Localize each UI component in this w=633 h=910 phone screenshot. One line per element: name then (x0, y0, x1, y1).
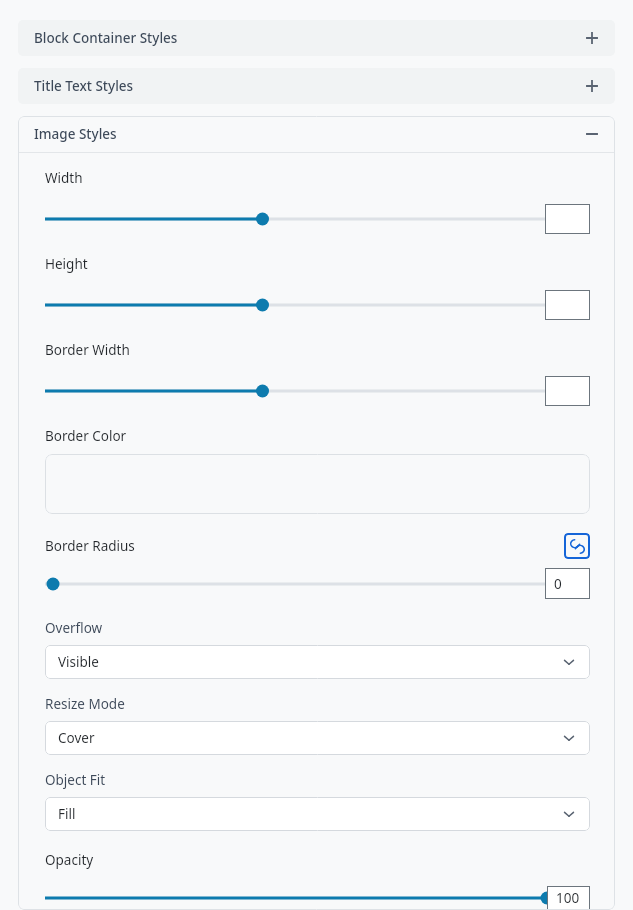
button[interactable]: Link border radius values (564, 533, 590, 559)
button[interactable] (45, 574, 545, 594)
button[interactable]: Title Text Styles (18, 68, 615, 104)
staticText: Image Styles (34, 125, 117, 143)
button[interactable] (545, 290, 590, 320)
staticText: Visible (58, 653, 99, 671)
button[interactable] (45, 888, 547, 908)
staticText: Border Radius (45, 537, 135, 555)
staticText: Width (45, 169, 83, 187)
staticText: Border Color (45, 427, 127, 445)
staticText: Block Container Styles (34, 29, 178, 47)
button[interactable] (545, 204, 590, 234)
button[interactable] (545, 376, 590, 406)
button[interactable]: Fill (45, 797, 590, 831)
staticText: Cover (58, 729, 95, 747)
other: Expand Block Container Styles (583, 29, 601, 47)
button[interactable]: 0 (545, 568, 590, 599)
button[interactable] (45, 209, 545, 229)
button[interactable] (45, 454, 590, 514)
button[interactable]: Block Container Styles (18, 20, 615, 56)
staticText: Title Text Styles (34, 77, 134, 95)
button[interactable]: Image Styles (18, 116, 615, 152)
staticText: Overflow (45, 619, 103, 637)
other: Collapse Image Styles (583, 125, 601, 143)
staticText: 100 (556, 889, 580, 907)
staticText: Height (45, 255, 88, 273)
staticText: Border Width (45, 341, 130, 359)
staticText: Resize Mode (45, 695, 125, 713)
staticText: Object Fit (45, 771, 106, 789)
button[interactable] (45, 295, 545, 315)
other: Expand Title Text Styles (583, 77, 601, 95)
button[interactable]: Visible (45, 645, 590, 679)
staticText: Opacity (45, 851, 94, 869)
staticText: Fill (58, 805, 76, 823)
button[interactable] (45, 381, 545, 401)
button[interactable]: 100 (547, 886, 590, 910)
button[interactable]: Cover (45, 721, 590, 755)
staticText: 0 (554, 575, 562, 593)
